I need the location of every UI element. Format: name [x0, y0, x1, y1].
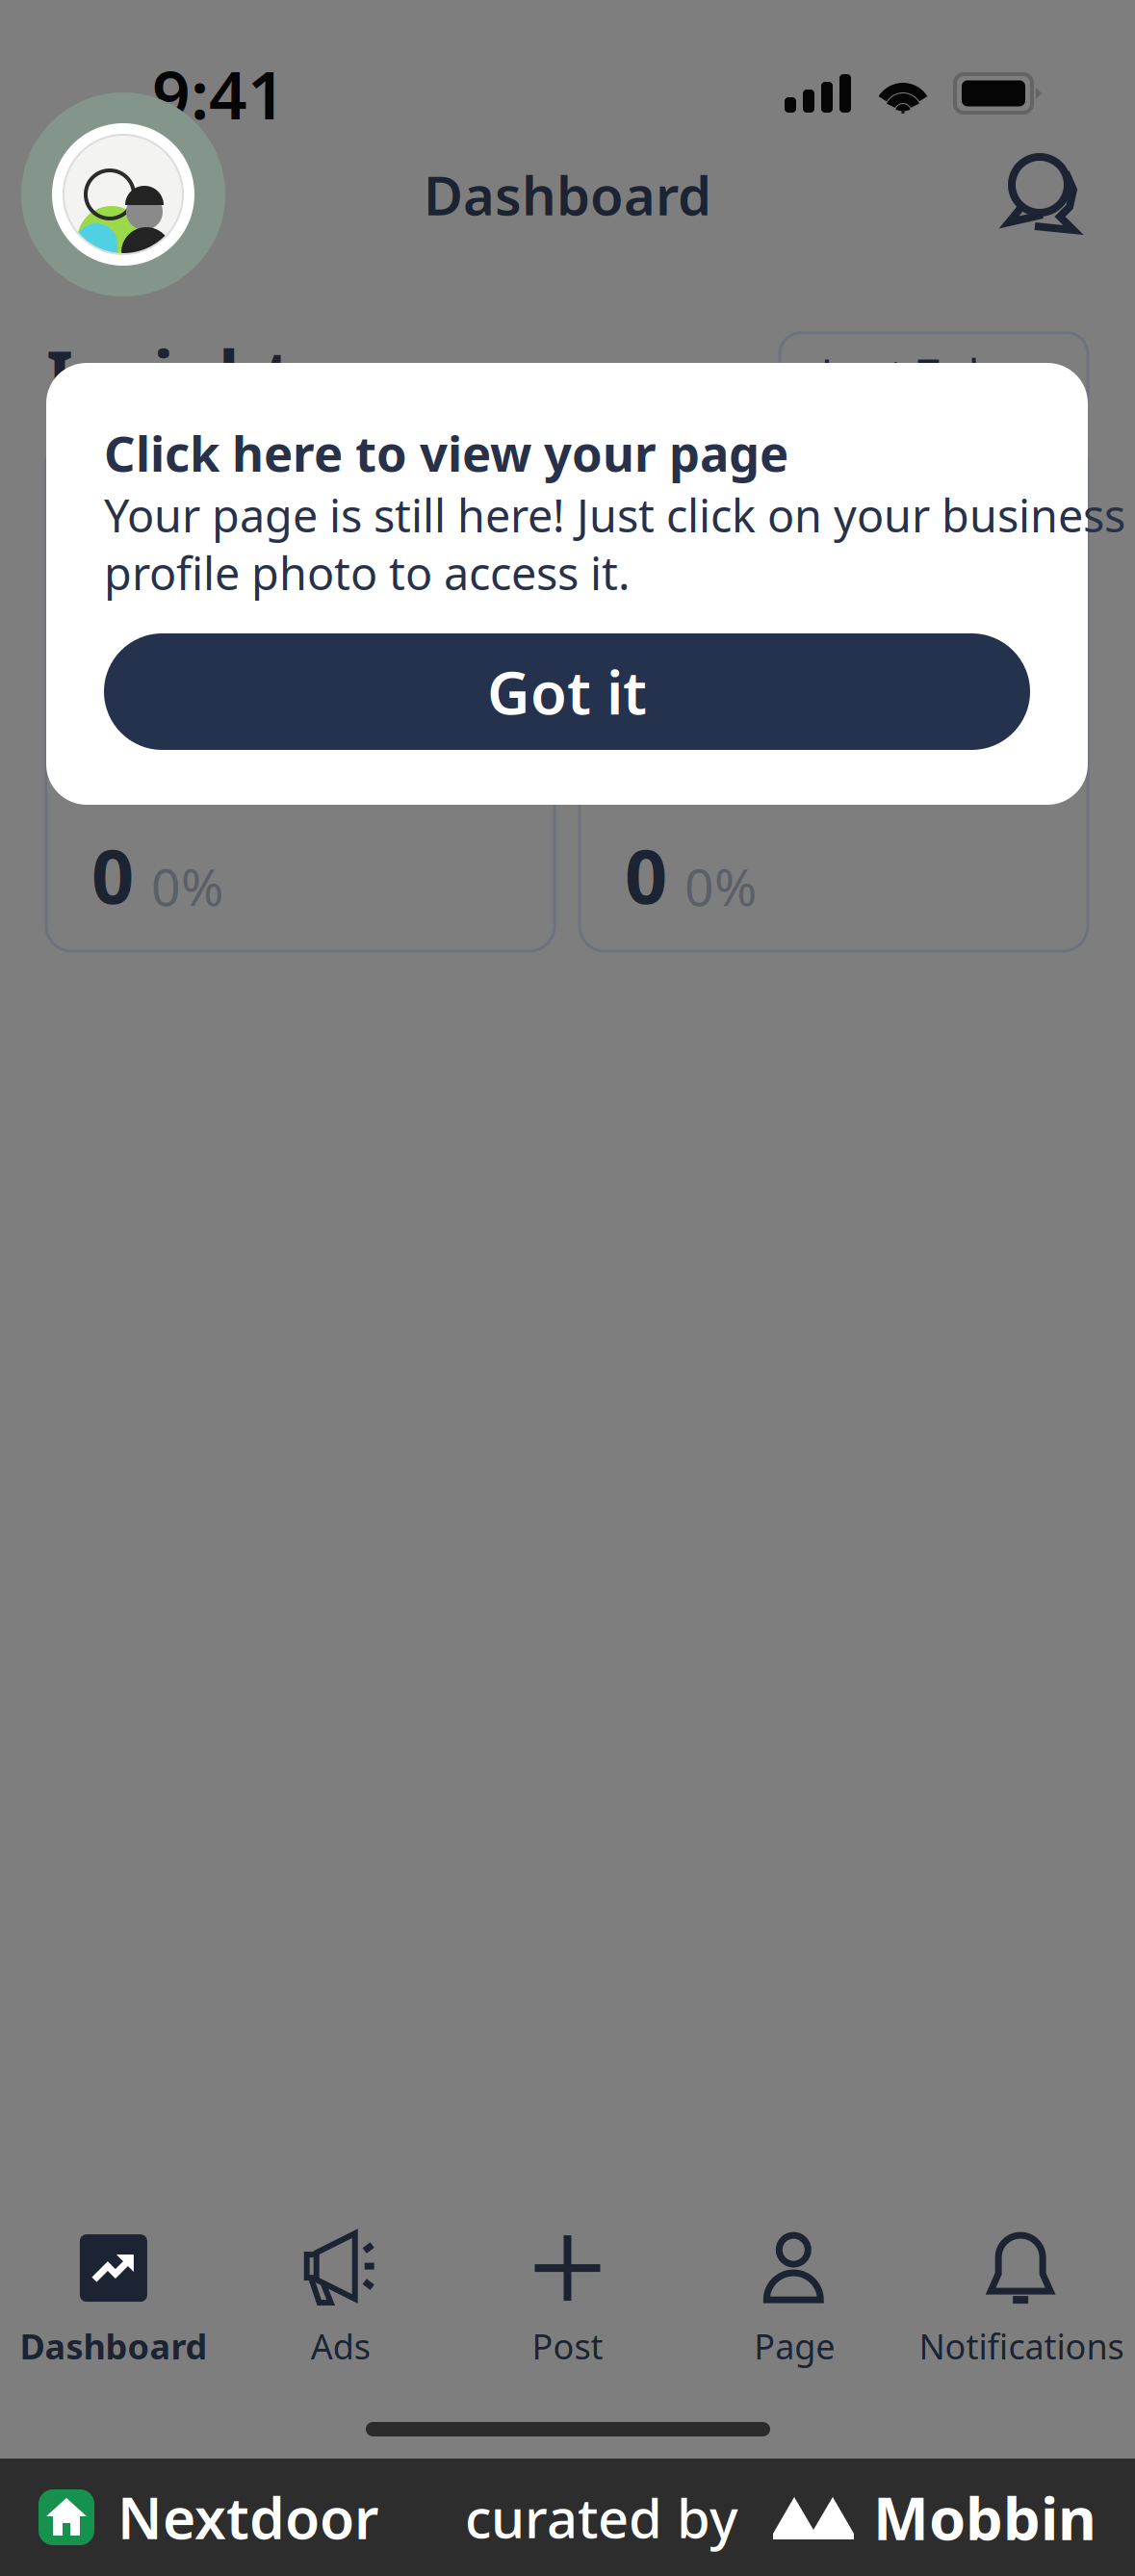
button[interactable]: Business profile — [21, 92, 225, 296]
button[interactable]: Ads — [227, 2225, 454, 2369]
staticText: 0% — [684, 852, 757, 920]
staticText: 9:41 — [152, 49, 286, 138]
staticText: Ads — [311, 2323, 370, 2369]
button[interactable]: Notifications — [908, 2225, 1135, 2369]
button[interactable]: Dashboard — [0, 2225, 227, 2369]
staticText: Insights — [46, 328, 328, 420]
staticText: Dashboard — [20, 2323, 207, 2369]
staticText: curated by — [465, 2481, 738, 2553]
staticText: 0 — [91, 825, 134, 924]
staticText: 0% — [151, 852, 223, 920]
staticText: Recommendations — [625, 741, 1045, 804]
button[interactable]: Page — [681, 2225, 908, 2369]
staticText: Click here to view your page — [104, 420, 788, 485]
staticText: Notifications — [919, 2323, 1124, 2369]
button[interactable]: Messages — [996, 147, 1089, 242]
staticText: Last 7 days — [821, 345, 1047, 403]
staticText: Dashboard — [424, 159, 711, 230]
staticText: 0 — [625, 825, 667, 924]
staticText: Your page is still here! Just click on y… — [104, 485, 1125, 545]
staticText: Page visits — [91, 741, 328, 804]
staticText: Nextdoor — [117, 2480, 378, 2555]
staticText: Mobbin — [873, 2478, 1096, 2556]
staticText: profile photo to access it. — [104, 543, 631, 603]
staticText: Got it — [487, 652, 647, 731]
button[interactable]: Last 7 days — [780, 333, 1088, 416]
button[interactable]: Got it — [104, 633, 1030, 750]
staticText: Page — [754, 2323, 835, 2369]
button[interactable]: Post — [454, 2225, 681, 2369]
staticText: Post — [532, 2323, 603, 2369]
